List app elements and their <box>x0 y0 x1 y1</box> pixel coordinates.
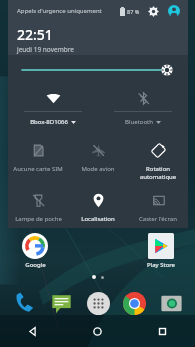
button[interactable]: Phone <box>10 289 38 317</box>
staticText: Mode avion <box>81 165 115 173</box>
button[interactable]: User <box>167 4 181 18</box>
button[interactable]: Bbox-8D1066 <box>8 85 98 135</box>
staticText: jeudi 19 novembre <box>17 45 74 54</box>
button[interactable]: Chrome <box>120 289 148 317</box>
staticText: Google <box>25 261 46 269</box>
button[interactable]: Home <box>65 315 130 347</box>
button[interactable]: Settings <box>147 5 160 18</box>
staticText: Aucune carte SIM <box>13 165 63 173</box>
button[interactable]: Aucune carte SIM <box>8 135 68 185</box>
button[interactable]: Localisation <box>68 185 128 228</box>
staticText: Lampe de poche <box>15 215 62 223</box>
staticText: Rotation automatique <box>131 165 185 181</box>
staticText: Bluetooth <box>125 118 153 126</box>
staticText: Localisation <box>81 215 115 223</box>
staticText: Play Store <box>147 261 175 269</box>
staticText: Caster l'écran <box>139 215 177 223</box>
button[interactable]: Caster l'écran <box>128 185 188 228</box>
staticText: Bbox-8D1066 <box>30 118 68 126</box>
button[interactable]: Bluetooth <box>98 85 188 135</box>
button[interactable]: Messages <box>47 289 75 317</box>
button[interactable]: Brightness <box>8 55 188 85</box>
button[interactable]: Mode avion <box>68 135 128 185</box>
button[interactable]: Camera <box>157 289 185 317</box>
staticText: 22:51 <box>17 25 53 44</box>
button[interactable]: Back <box>0 315 65 347</box>
button[interactable]: Recents <box>130 315 195 347</box>
button[interactable]: All apps <box>84 289 112 317</box>
button[interactable]: Google <box>13 233 57 269</box>
button[interactable]: Play Store <box>139 233 183 269</box>
staticText: Appels d'urgence uniquement <box>17 7 102 15</box>
staticText: 87 % <box>127 8 140 15</box>
button[interactable]: Rotation automatique <box>128 135 188 185</box>
button[interactable]: Lampe de poche <box>8 185 68 228</box>
